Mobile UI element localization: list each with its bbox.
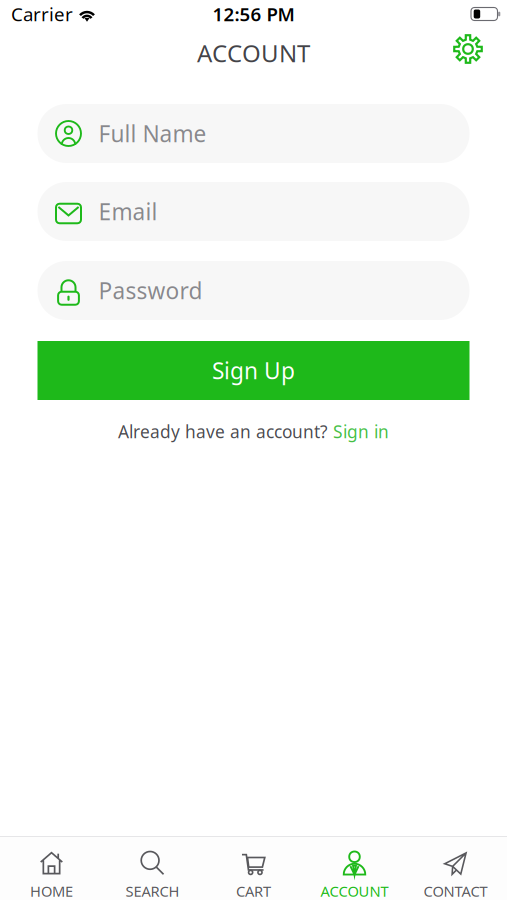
- button[interactable]: Sign Up: [37, 341, 469, 400]
- button[interactable]: Password: [37, 261, 469, 320]
- button[interactable]: Full Name: [37, 104, 469, 163]
- staticText: Password: [98, 275, 202, 305]
- staticText: Sign Up: [212, 355, 295, 385]
- button[interactable]: Already have an account?: [118, 414, 389, 449]
- staticText: HOME: [30, 881, 73, 900]
- staticText: Already have an account?: [118, 420, 328, 443]
- staticText: Email: [98, 196, 157, 226]
- button[interactable]: Email: [37, 182, 469, 241]
- staticText: SEARCH: [125, 881, 179, 900]
- staticText: CONTACT: [423, 881, 487, 900]
- staticText: Sign in: [333, 420, 389, 443]
- button[interactable]: CART: [203, 837, 304, 900]
- staticText: ACCOUNT: [197, 37, 310, 69]
- button[interactable]: HOME: [1, 837, 102, 900]
- staticText: 12:56 PM: [212, 2, 294, 26]
- staticText: CART: [236, 881, 271, 900]
- staticText: Full Name: [98, 118, 206, 148]
- button[interactable]: ACCOUNT: [304, 837, 405, 900]
- staticText: Carrier: [11, 2, 73, 26]
- button[interactable]: SEARCH: [102, 837, 203, 900]
- staticText: ACCOUNT: [320, 881, 388, 900]
- button[interactable]: CONTACT: [405, 837, 506, 900]
- button[interactable]: Settings: [446, 31, 490, 75]
